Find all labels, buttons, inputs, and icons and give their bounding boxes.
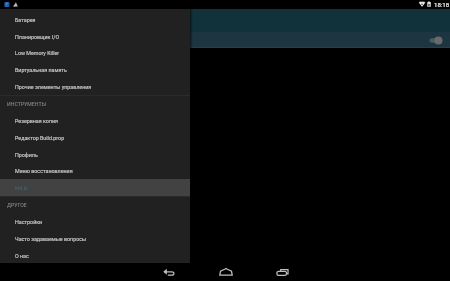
button[interactable]: Recents [254,263,311,281]
staticText: Low Memory Killer [15,50,60,56]
button[interactable]: init.d [0,179,190,196]
staticText: Планировщик I/O [15,34,60,40]
staticText: Редактор Build.prop [15,135,65,141]
button[interactable]: Батарея [0,11,190,28]
staticText: Настройки [15,219,43,225]
button[interactable]: Меню восстановления [0,162,190,179]
staticText: ИНСТРУМЕНТЫ [7,101,47,107]
button[interactable]: Резервная копия [0,112,190,129]
button[interactable]: Планировщик I/O [0,28,190,45]
staticText: init.d [15,185,27,191]
button[interactable]: Home [197,263,254,281]
button[interactable]: Toggle [429,35,443,46]
staticText: 18:18 [434,1,450,8]
staticText: Меню восстановления [15,168,73,174]
staticText: Резервная копия [15,118,59,124]
staticText: ДРУГОЕ [7,202,27,208]
button[interactable]: Low Memory Killer [0,44,190,61]
button[interactable]: Back [140,263,197,281]
staticText: О нас [15,253,29,259]
button[interactable]: О нас [0,247,190,264]
button[interactable]: Редактор Build.prop [0,129,190,146]
button[interactable]: Часто задаваемые вопросы [0,230,190,247]
staticText: Виртуальная память [15,67,67,73]
button[interactable]: Профиль [0,146,190,163]
button[interactable]: Виртуальная память [0,61,190,78]
staticText: Прочие элементы управления [15,84,92,90]
staticText: Профиль [15,152,38,158]
staticText: Часто задаваемые вопросы [15,236,87,242]
staticText: Батарея [15,17,36,23]
button[interactable]: Настройки [0,213,190,230]
button[interactable]: Прочие элементы управления [0,78,190,95]
